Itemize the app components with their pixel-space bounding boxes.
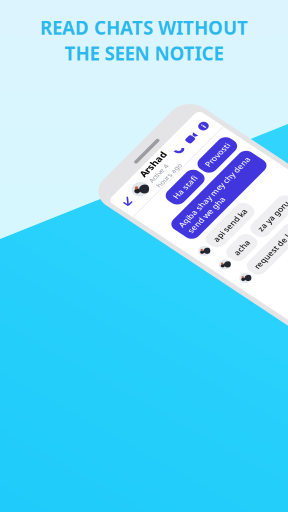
staticText: Provosti [90, 59, 121, 70]
button[interactable]: Provosti [84, 55, 127, 74]
staticText: READ CHATS WITHOUT [40, 15, 248, 40]
staticText: Ha stafi [45, 59, 75, 70]
button[interactable]: Voice call [82, 29, 93, 39]
staticText: THE SEEN NOTICE [64, 41, 223, 66]
button[interactable]: Conversation info [117, 29, 127, 38]
button[interactable]: Video call [99, 30, 111, 37]
button[interactable]: Ha stafi [39, 55, 81, 74]
staticText: Active 4 hours ago [45, 31, 77, 49]
staticText: Arshad [45, 18, 78, 31]
